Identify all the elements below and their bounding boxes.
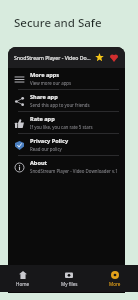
- staticText: SnodStream Player - Video Downlo...: [14, 54, 94, 61]
- staticText: Read our policy: [30, 146, 62, 152]
- button[interactable]: Home: [0, 265, 46, 292]
- staticText: SnodStream Player - Video Downloader v.1: [30, 168, 118, 174]
- staticText: Secure and Safe: [14, 15, 102, 31]
- button[interactable]: Share app: [8, 90, 125, 111]
- button[interactable]: About: [8, 156, 125, 177]
- button[interactable]: Privacy Policy: [8, 134, 125, 155]
- staticText: If you like, you can rate 5 stars: [30, 124, 93, 130]
- staticText: Share app: [30, 93, 58, 101]
- staticText: More apps: [30, 71, 60, 79]
- staticText: Home: [16, 281, 30, 287]
- staticText: More: [109, 281, 121, 287]
- staticText: About: [30, 159, 47, 167]
- staticText: Rate app: [30, 115, 55, 123]
- button[interactable]: More: [92, 265, 138, 292]
- staticText: My files: [61, 281, 78, 287]
- staticText: Privacy Policy: [30, 137, 69, 145]
- button[interactable]: More apps: [8, 68, 125, 89]
- button[interactable]: Premium: [94, 52, 105, 63]
- staticText: View more our apps: [30, 80, 72, 86]
- button[interactable]: Rate app: [8, 112, 125, 133]
- button[interactable]: Favorites: [108, 52, 119, 63]
- button[interactable]: My files: [46, 265, 92, 292]
- staticText: Send this app to your friends: [30, 102, 90, 108]
- button[interactable]: SnodStream Player - Video Downlo...: [8, 47, 125, 68]
